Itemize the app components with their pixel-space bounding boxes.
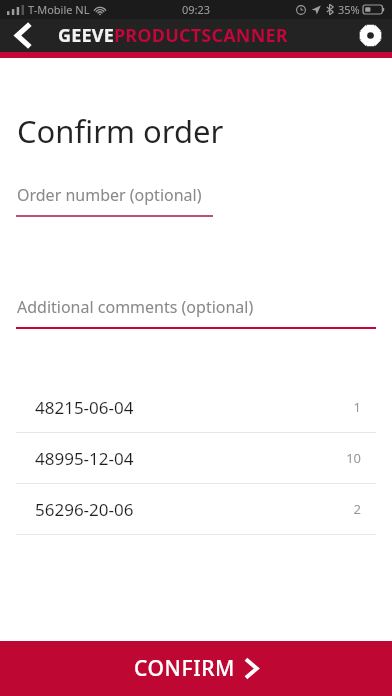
button[interactable]: 48215-06-04	[0, 382, 392, 433]
button[interactable]: Settings	[348, 19, 392, 52]
staticText: 10	[346, 449, 361, 467]
staticText: CONFIRM	[134, 654, 235, 683]
staticText: 56296-20-06	[35, 498, 353, 521]
staticText: 48215-06-04	[35, 396, 353, 419]
staticText: 1	[353, 398, 361, 416]
button[interactable]: Order number (optional)	[0, 184, 392, 217]
button[interactable]: Additional comments (optional)	[0, 296, 392, 329]
staticText: 2	[353, 500, 361, 518]
staticText: Order number (optional)	[17, 184, 202, 206]
staticText: 48995-12-04	[35, 447, 346, 470]
staticText: GEEVEPRODUCTSCANNER	[58, 23, 288, 48]
button[interactable]: Back	[0, 19, 44, 52]
staticText: 09:23	[182, 2, 211, 17]
button[interactable]: CONFIRM	[0, 641, 392, 696]
staticText: Additional comments (optional)	[17, 296, 254, 318]
staticText: Confirm order	[17, 110, 224, 152]
staticText: T-Mobile NL	[28, 2, 90, 17]
button[interactable]: 56296-20-06	[0, 484, 392, 535]
staticText: 35%	[338, 2, 360, 17]
button[interactable]: 48995-12-04	[0, 433, 392, 484]
